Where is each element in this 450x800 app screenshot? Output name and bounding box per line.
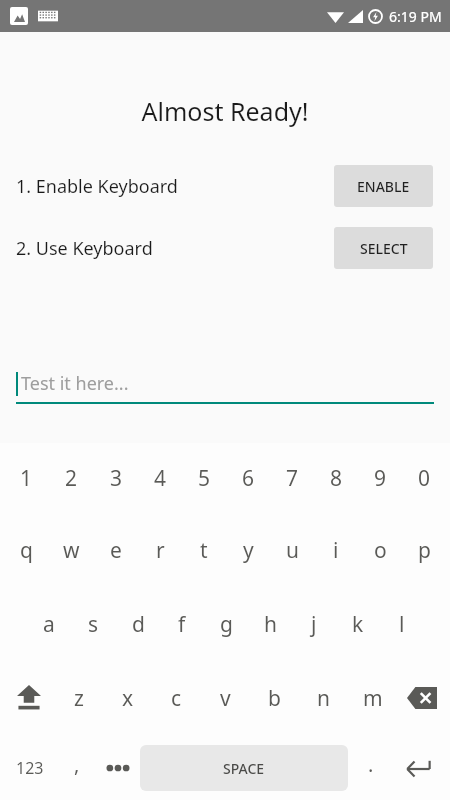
button[interactable]: e	[94, 513, 138, 588]
staticText: 0	[418, 464, 431, 493]
button[interactable]: t	[182, 513, 226, 588]
staticText: 7	[286, 464, 299, 493]
button[interactable]: 6	[226, 443, 270, 513]
button[interactable]: 5	[182, 443, 226, 513]
staticText: s	[88, 610, 99, 639]
staticText: 1	[20, 464, 33, 493]
staticText: t	[200, 536, 208, 565]
staticText: b	[268, 684, 281, 713]
staticText: i	[333, 536, 339, 565]
button[interactable]: 0	[402, 443, 446, 513]
staticText: m	[363, 684, 383, 713]
staticText: 5	[198, 464, 211, 493]
staticText: x	[122, 684, 134, 713]
staticText: k	[352, 610, 364, 639]
button[interactable]: f	[160, 588, 204, 661]
staticText: n	[317, 684, 330, 713]
button[interactable]: Test it here...	[16, 362, 434, 404]
button[interactable]: d	[116, 588, 160, 661]
button[interactable]: ENABLE	[334, 165, 433, 207]
staticText: l	[399, 610, 405, 639]
button[interactable]: y	[226, 513, 270, 588]
button[interactable]: Backspace	[397, 661, 446, 735]
staticText: 2	[65, 464, 78, 493]
button[interactable]: v	[201, 661, 250, 735]
button[interactable]: j	[292, 588, 336, 661]
button[interactable]: s	[71, 588, 116, 661]
staticText: j	[311, 610, 317, 639]
button[interactable]: n	[299, 661, 348, 735]
staticText: Test it here...	[21, 371, 129, 396]
button[interactable]: 123	[4, 735, 56, 800]
staticText: z	[74, 684, 84, 713]
button[interactable]: o	[358, 513, 402, 588]
button[interactable]: 1	[4, 443, 49, 513]
button[interactable]: c	[152, 661, 201, 735]
staticText: Almost Ready!	[0, 94, 450, 128]
button[interactable]: SELECT	[334, 227, 433, 269]
staticText: h	[264, 610, 277, 639]
button[interactable]: SPACE	[140, 745, 348, 791]
button[interactable]: .	[350, 735, 391, 800]
staticText: u	[286, 536, 299, 565]
button[interactable]: x	[103, 661, 152, 735]
button[interactable]: i	[314, 513, 358, 588]
staticText: c	[171, 684, 182, 713]
button[interactable]: Shift	[4, 661, 54, 735]
button[interactable]: 9	[358, 443, 402, 513]
button[interactable]: More options	[97, 735, 138, 800]
staticText: w	[63, 536, 80, 565]
button[interactable]: b	[250, 661, 299, 735]
button[interactable]: 3	[94, 443, 138, 513]
staticText: v	[220, 684, 231, 713]
staticText: y	[243, 536, 254, 565]
button[interactable]: 4	[138, 443, 182, 513]
staticText: g	[220, 610, 233, 639]
staticText: 6	[242, 464, 255, 493]
staticText: 123	[16, 757, 44, 779]
button[interactable]: 2	[49, 443, 94, 513]
staticText: ,	[74, 751, 80, 778]
staticText: o	[374, 536, 387, 565]
button[interactable]: g	[204, 588, 248, 661]
staticText: d	[132, 610, 145, 639]
staticText: 3	[110, 464, 123, 493]
staticText: a	[43, 610, 55, 639]
staticText: p	[418, 536, 431, 565]
staticText: 9	[374, 464, 387, 493]
button[interactable]: k	[336, 588, 380, 661]
staticText: e	[110, 536, 122, 565]
button[interactable]: h	[248, 588, 292, 661]
button[interactable]: 8	[314, 443, 358, 513]
staticText: .	[368, 751, 374, 778]
button[interactable]: ,	[56, 735, 97, 800]
button[interactable]: a	[26, 588, 71, 661]
staticText: f	[178, 610, 186, 639]
button[interactable]: z	[54, 661, 103, 735]
staticText: SELECT	[360, 239, 408, 258]
button[interactable]: u	[270, 513, 314, 588]
button[interactable]: Enter	[391, 735, 446, 800]
button[interactable]: q	[4, 513, 49, 588]
button[interactable]: w	[49, 513, 94, 588]
staticText: 1. Enable Keyboard	[16, 174, 178, 199]
staticText: q	[20, 536, 33, 565]
button[interactable]: r	[138, 513, 182, 588]
staticText: SPACE	[223, 759, 265, 778]
staticText: ENABLE	[357, 177, 410, 196]
staticText: 2. Use Keyboard	[16, 236, 153, 261]
button[interactable]: m	[348, 661, 397, 735]
staticText: 6:19 PM	[389, 7, 442, 26]
staticText: r	[156, 536, 165, 565]
staticText: 4	[154, 464, 167, 493]
button[interactable]: p	[402, 513, 446, 588]
staticText: 8	[330, 464, 343, 493]
button[interactable]: l	[380, 588, 424, 661]
button[interactable]: 7	[270, 443, 314, 513]
